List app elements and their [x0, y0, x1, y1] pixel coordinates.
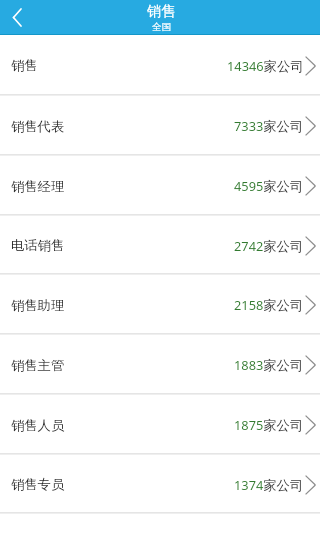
staticText: 销售 — [147, 2, 176, 20]
button[interactable]: 电话销售 — [0, 216, 320, 275]
staticText: 2742家公司 — [234, 237, 304, 255]
button[interactable]: 销售助理 — [0, 275, 320, 335]
staticText: 销售主管 — [11, 357, 65, 374]
staticText: 电话销售 — [11, 237, 65, 254]
staticText: 2158家公司 — [234, 296, 304, 314]
button[interactable]: 销售专员 — [0, 455, 320, 514]
staticText: 4595家公司 — [234, 177, 304, 195]
staticText: 销售专员 — [11, 476, 65, 493]
staticText: 销售人员 — [11, 417, 65, 434]
staticText: 1374家公司 — [234, 476, 304, 494]
staticText: 7333家公司 — [234, 117, 304, 135]
staticText: 销售经理 — [11, 178, 65, 195]
button[interactable]: 销售经理 — [0, 156, 320, 216]
staticText: 销售 — [11, 57, 38, 74]
staticText: 销售助理 — [11, 297, 65, 314]
button[interactable]: Back — [0, 0, 34, 35]
staticText: 14346家公司 — [227, 57, 304, 75]
staticText: 全国 — [152, 21, 171, 33]
button[interactable]: 销售代表 — [0, 96, 320, 156]
staticText: 1875家公司 — [234, 416, 304, 434]
button[interactable]: 销售 — [0, 35, 320, 96]
staticText: 销售代表 — [11, 118, 65, 135]
button[interactable]: 销售人员 — [0, 395, 320, 455]
staticText: 1883家公司 — [234, 356, 304, 374]
button[interactable]: 销售主管 — [0, 335, 320, 395]
